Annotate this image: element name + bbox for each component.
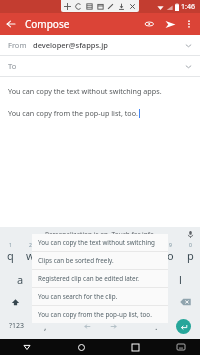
button[interactable]: 5 [80,242,100,266]
button[interactable]: c [70,290,90,314]
button[interactable]: Switch keyboard [162,339,200,355]
staticText: 5 [89,242,92,249]
button[interactable]: 1 [0,242,20,266]
button[interactable]: 8 [140,242,160,266]
staticText: r [68,248,73,263]
button[interactable]: You can search for the clip. [32,288,168,305]
button[interactable]: 4 [60,242,80,266]
button[interactable]: To [0,56,200,76]
staticText: b [117,296,124,311]
button[interactable]: Refresh [74,2,83,11]
staticText: a [17,272,24,287]
staticText: u [127,248,134,263]
staticText: You can search for the clip. [38,292,118,301]
button[interactable]: n [130,290,150,314]
staticText: You can copy from the pop-up list, too. [8,108,138,118]
button[interactable]: Hide keyboard [0,339,54,355]
staticText: , [44,320,47,332]
button[interactable]: Space [56,314,145,338]
button[interactable]: d [50,266,70,290]
button[interactable]: g [90,266,110,290]
staticText: ?123 [9,321,25,331]
staticText: 2 [29,242,32,249]
button[interactable]: b [110,290,130,314]
staticText: 8 [149,242,152,249]
button[interactable]: s [30,266,50,290]
staticText: y [107,248,113,263]
button[interactable]: 0 [180,242,200,266]
staticText: Personalization is on. Touch for info. [45,230,156,239]
button[interactable]: Attach [140,14,160,34]
staticText: s [37,272,43,287]
staticText: w [26,248,35,263]
button[interactable]: Backspace [170,290,200,314]
staticText: 0 [189,242,192,249]
button[interactable]: Back [0,13,22,35]
button[interactable]: v [90,290,110,314]
staticText: 1 [9,242,12,249]
button[interactable]: Enter [167,314,200,338]
staticText: Clips can be sorted freely. [38,256,114,265]
staticText: p [187,248,194,263]
button[interactable]: Comma [34,314,56,338]
staticText: . [155,320,158,332]
button[interactable]: f [70,266,90,290]
button[interactable]: j [130,266,150,290]
staticText: q [7,248,14,263]
staticText: m [155,296,166,311]
staticText: 6 [109,242,112,249]
button[interactable]: Download [117,2,126,11]
button[interactable]: Recents [108,339,162,355]
button[interactable]: Calendar [96,2,105,11]
staticText: t [88,248,92,263]
button[interactable]: Voice input [184,228,196,240]
button[interactable]: Shift [0,290,30,314]
button[interactable]: You can copy the text without switching … [32,234,168,251]
button[interactable]: Period [145,314,167,338]
button[interactable]: ?123 [0,314,34,338]
button[interactable]: z [30,290,50,314]
button[interactable]: l [170,266,190,290]
button[interactable]: Close [128,2,137,11]
staticText: h [117,272,124,287]
staticText: o [167,248,174,263]
staticText: You can copy the text without switching … [8,86,162,96]
button[interactable]: Move [63,2,72,11]
staticText: e [47,248,54,263]
button[interactable]: a [10,266,30,290]
button[interactable]: 2 [20,242,40,266]
button[interactable]: Clips can be sorted freely. [32,252,168,269]
staticText: v [97,296,103,311]
staticText: To [8,61,17,71]
staticText: 4 [69,242,72,249]
button[interactable]: Edit [106,2,115,11]
button[interactable]: You can copy the text without switching … [8,86,192,118]
button[interactable]: More options [180,15,198,33]
button[interactable]: List [85,2,94,11]
staticText: 1:46 [181,2,195,12]
staticText: developer@sfapps.jp [33,40,108,50]
button[interactable]: x [50,290,70,314]
button[interactable]: Registered clip can be edited later. [32,270,168,287]
button[interactable]: 3 [40,242,60,266]
staticText: From [8,40,27,50]
staticText: c [77,296,83,311]
staticText: f [78,272,82,287]
button[interactable]: Send [160,14,180,34]
button[interactable]: From [0,35,200,55]
staticText: 7 [129,242,132,249]
button[interactable]: h [110,266,130,290]
button[interactable]: m [150,290,170,314]
staticText: i [149,248,152,263]
button[interactable]: 6 [100,242,120,266]
button[interactable]: 7 [120,242,140,266]
button[interactable]: 9 [160,242,180,266]
button[interactable]: k [150,266,170,290]
staticText: z [37,296,43,311]
button[interactable]: Home [54,339,108,355]
staticText: Registered clip can be edited later. [38,274,139,283]
button[interactable]: You can copy from the pop-up list, too. [32,306,168,323]
button[interactable]: Personalization is on. Touch for info. [0,230,200,239]
